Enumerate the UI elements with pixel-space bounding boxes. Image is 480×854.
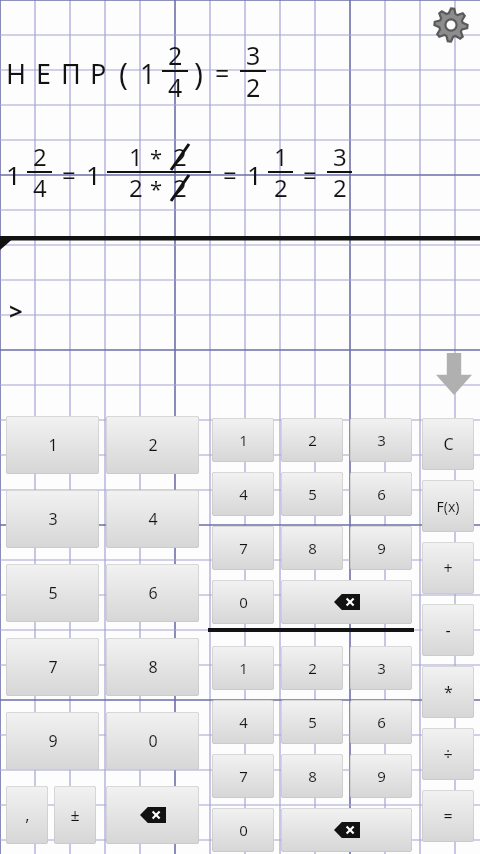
staticText: 7: [239, 538, 248, 558]
button[interactable]: 6: [350, 472, 412, 516]
button[interactable]: 5: [6, 564, 99, 622]
staticText: 9: [377, 766, 386, 786]
staticText: Н: [6, 55, 27, 92]
button[interactable]: Backspace numerator: [281, 580, 412, 624]
staticText: 1: [140, 55, 156, 92]
staticText: 0: [148, 730, 158, 752]
button[interactable]: =: [422, 790, 474, 842]
button[interactable]: +: [422, 542, 474, 594]
staticText: 9: [377, 538, 386, 558]
button[interactable]: 4: [212, 700, 274, 744]
button[interactable]: 3: [350, 418, 412, 462]
staticText: 3: [246, 38, 261, 72]
staticText: 2: [148, 434, 158, 456]
staticText: 1: [48, 434, 58, 456]
staticText: >: [9, 294, 23, 327]
button[interactable]: ±: [54, 786, 96, 844]
staticText: 8: [308, 538, 317, 558]
button[interactable]: 1: [212, 418, 274, 462]
button[interactable]: 7: [212, 526, 274, 570]
button[interactable]: 3: [350, 646, 412, 690]
button[interactable]: 4: [212, 472, 274, 516]
staticText: 1: [239, 430, 248, 450]
button[interactable]: *: [422, 666, 474, 718]
staticText: +: [443, 557, 453, 579]
button[interactable]: 7: [6, 638, 99, 696]
staticText: 6: [148, 582, 158, 604]
button[interactable]: 2: [281, 418, 343, 462]
button[interactable]: 9: [350, 754, 412, 798]
staticText: 4: [239, 484, 248, 504]
staticText: 3: [48, 508, 58, 530]
staticText: =: [215, 56, 230, 90]
button[interactable]: ,: [6, 786, 48, 844]
button[interactable]: 7: [212, 754, 274, 798]
staticText: ,: [25, 804, 30, 826]
button[interactable]: 6: [106, 564, 199, 622]
staticText: 3: [377, 658, 386, 678]
staticText: -: [445, 619, 451, 641]
button[interactable]: C: [422, 418, 474, 470]
staticText: =: [303, 158, 317, 191]
staticText: 2: [274, 171, 288, 204]
staticText: 5: [308, 484, 317, 504]
button[interactable]: Backspace: [106, 786, 199, 844]
staticText: 6: [377, 484, 386, 504]
staticText: 5: [48, 582, 58, 604]
button[interactable]: Backspace denominator: [281, 808, 412, 852]
button[interactable]: ÷: [422, 728, 474, 780]
button[interactable]: 4: [106, 490, 199, 548]
staticText: 0: [239, 592, 248, 612]
staticText: 8: [308, 766, 317, 786]
button[interactable]: Settings: [430, 4, 472, 46]
staticText: 2: [33, 140, 47, 173]
staticText: Е: [36, 55, 52, 92]
staticText: 1: [247, 157, 262, 192]
button[interactable]: 8: [281, 754, 343, 798]
button[interactable]: 5: [281, 700, 343, 744]
button[interactable]: 0: [212, 580, 274, 624]
staticText: 7: [239, 766, 248, 786]
staticText: ±: [70, 804, 80, 826]
button[interactable]: -: [422, 604, 474, 656]
staticText: =: [62, 158, 76, 191]
staticText: =: [223, 158, 237, 191]
staticText: F(x): [436, 497, 460, 516]
staticText: 7: [48, 656, 58, 678]
staticText: 2: [308, 658, 317, 678]
button[interactable]: 9: [350, 526, 412, 570]
staticText: 2: [173, 171, 187, 204]
staticText: ): [194, 53, 203, 94]
staticText: 2: [129, 171, 143, 204]
button[interactable]: 1: [6, 416, 99, 474]
button[interactable]: 0: [212, 808, 274, 852]
button[interactable]: 5: [281, 472, 343, 516]
button[interactable]: F(x): [422, 480, 474, 532]
staticText: 1: [239, 658, 248, 678]
button[interactable]: 2: [106, 416, 199, 474]
button[interactable]: 1: [212, 646, 274, 690]
staticText: 4: [239, 712, 248, 732]
button[interactable]: Scroll down: [432, 352, 476, 396]
staticText: *: [150, 173, 163, 203]
staticText: 1: [6, 157, 21, 192]
button[interactable]: 0: [106, 712, 199, 770]
staticText: =: [443, 805, 453, 827]
button[interactable]: 9: [6, 712, 99, 770]
button[interactable]: 6: [350, 700, 412, 744]
staticText: 1: [274, 140, 288, 173]
staticText: 4: [168, 70, 183, 104]
staticText: *: [150, 142, 163, 172]
button[interactable]: 2: [281, 646, 343, 690]
button[interactable]: 8: [106, 638, 199, 696]
staticText: *: [444, 681, 453, 703]
staticText: 2: [333, 171, 347, 204]
staticText: 5: [308, 712, 317, 732]
staticText: ÷: [443, 743, 453, 765]
staticText: 2: [173, 140, 187, 173]
staticText: 3: [377, 430, 386, 450]
staticText: 4: [148, 508, 158, 530]
staticText: 6: [377, 712, 386, 732]
button[interactable]: 8: [281, 526, 343, 570]
button[interactable]: 3: [6, 490, 99, 548]
